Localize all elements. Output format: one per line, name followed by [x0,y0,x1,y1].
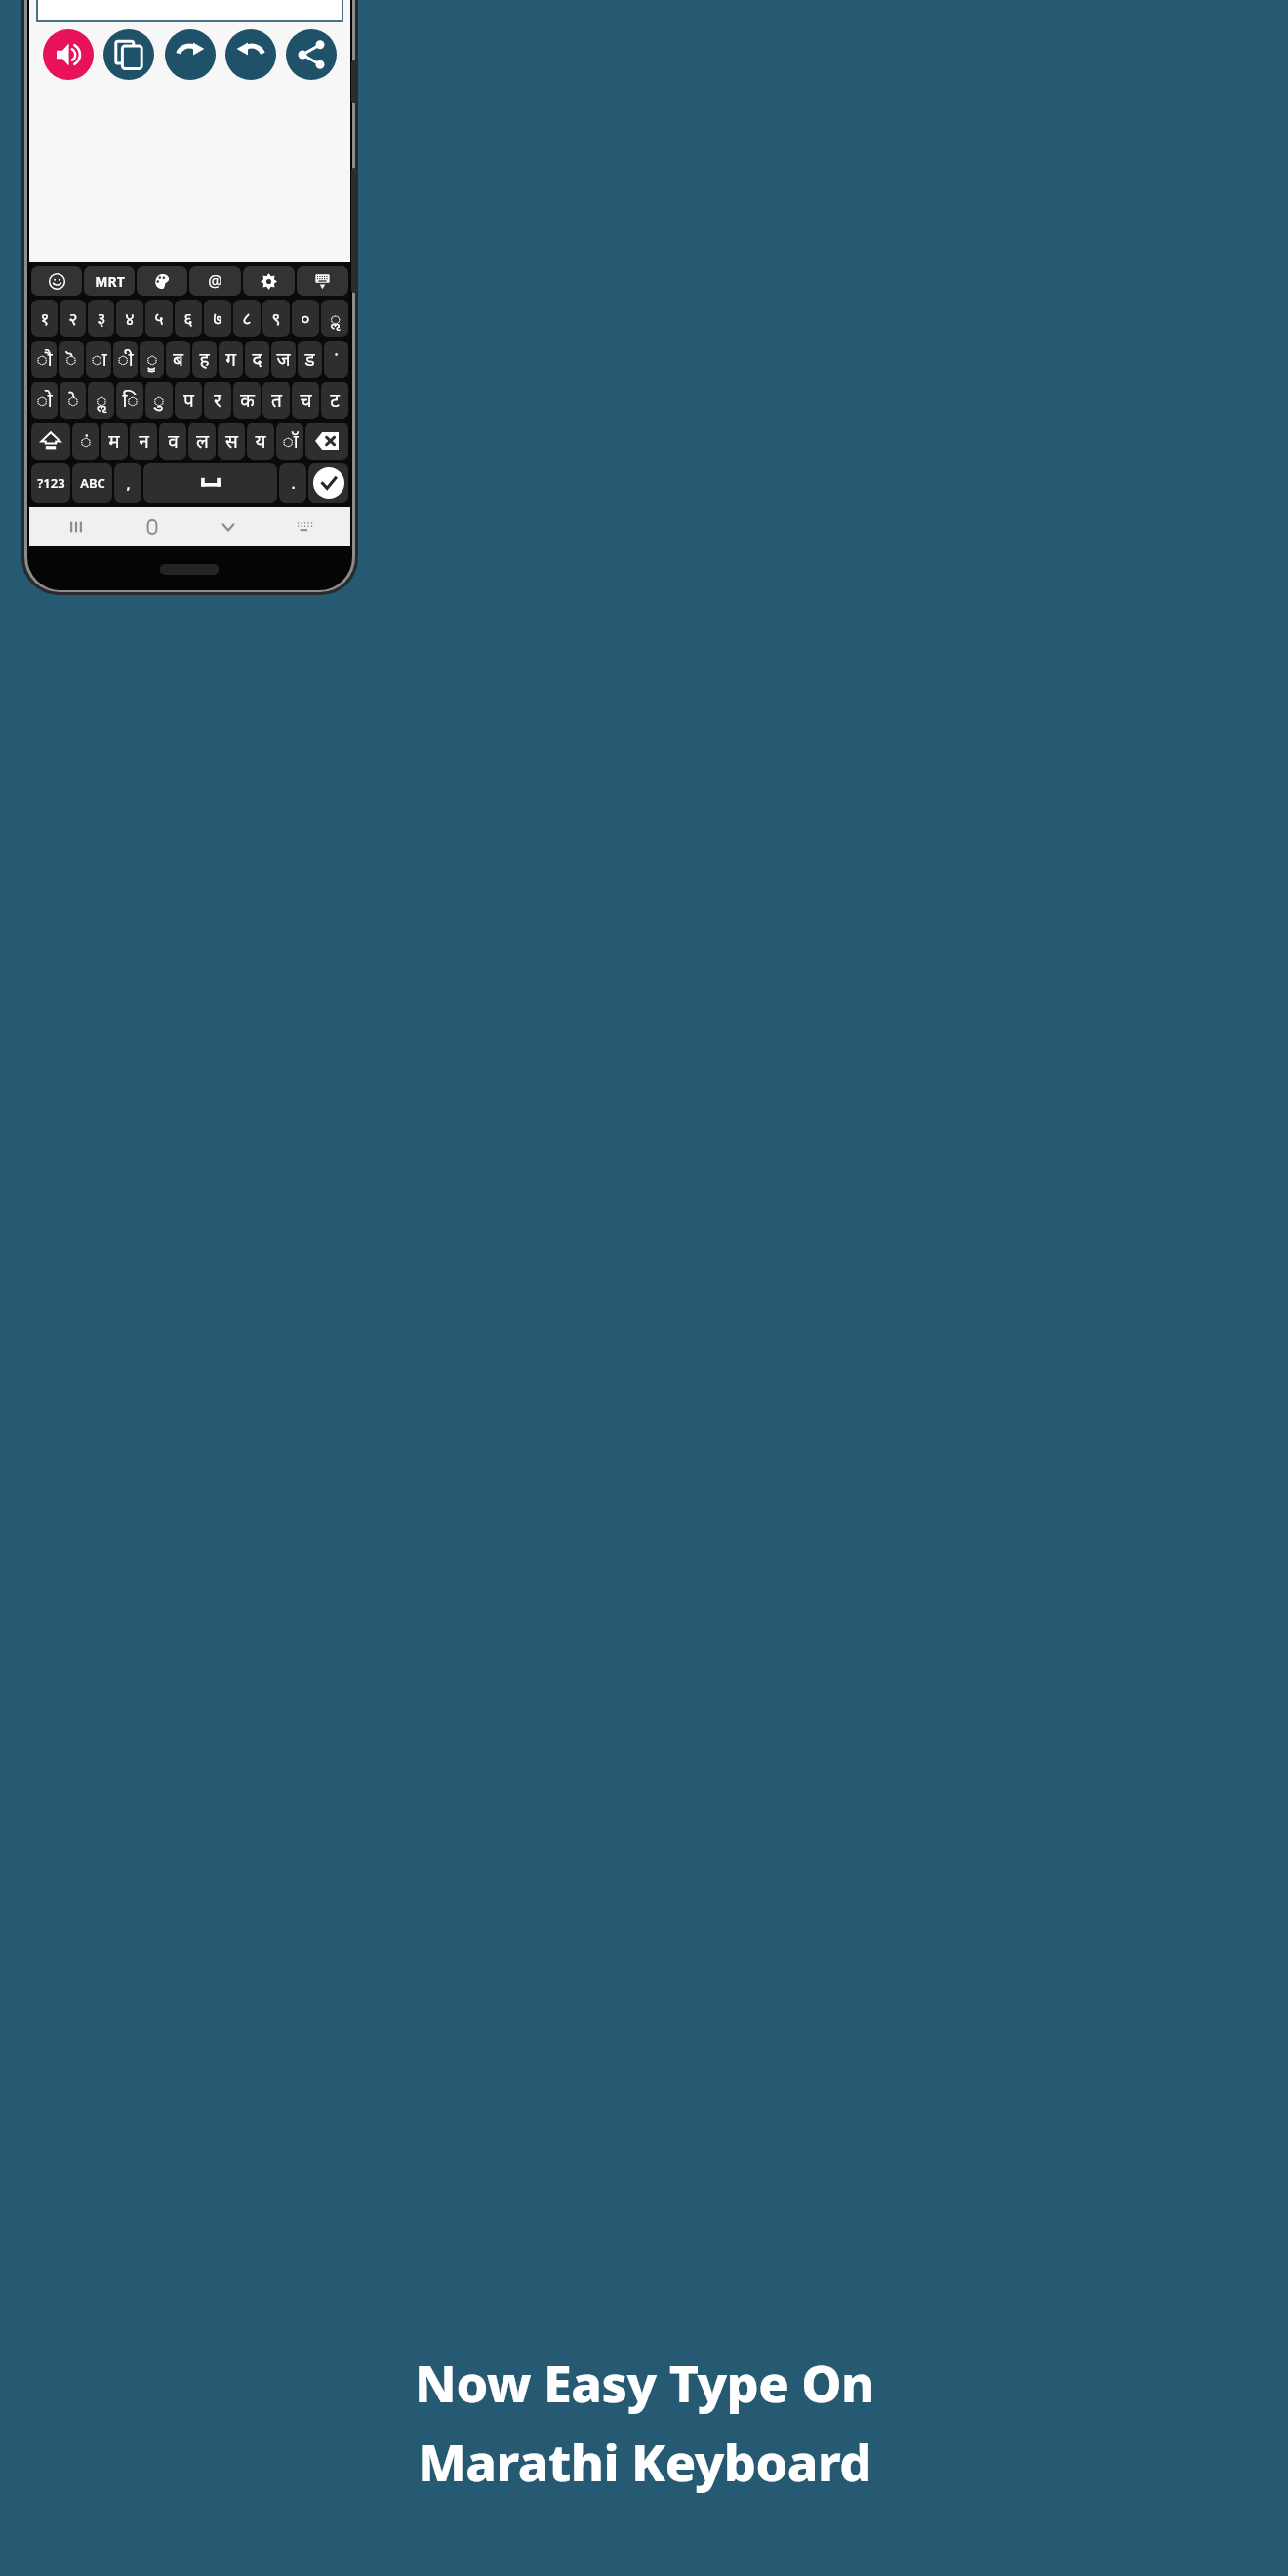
button[interactable]: ौ [31,341,57,378]
staticText: ABC [80,474,105,492]
button[interactable]: ी [113,341,138,378]
button[interactable]: ४ [116,300,143,337]
staticText: ड [304,346,315,372]
button[interactable]: ि [116,382,143,419]
staticText: क [240,387,255,413]
button[interactable]: Share [286,29,337,80]
button[interactable]: प [175,382,202,419]
button[interactable]: Speak [43,29,94,80]
button[interactable]: ॢ [321,300,348,337]
button[interactable]: ॉ [276,423,303,460]
button[interactable]: ७ [204,300,231,337]
button[interactable]: व [159,423,186,460]
button[interactable]: ABC [72,463,112,503]
staticText: ा [91,346,107,372]
button[interactable]: ा [86,341,111,378]
button[interactable]: त [262,382,290,419]
staticText: ॗ [146,346,158,372]
button[interactable]: Redo [165,29,216,80]
button[interactable]: , [114,463,141,503]
button[interactable]: ५ [145,300,173,337]
button[interactable]: ८ [233,300,261,337]
button[interactable]: ॱ [324,341,348,378]
button[interactable]: ग [219,341,243,378]
button[interactable]: Themes [137,266,187,296]
staticText: ४ [125,306,135,331]
button[interactable]: Recents [57,507,96,546]
button[interactable]: . [279,463,306,503]
staticText: े [67,387,79,413]
button[interactable]: स [218,423,245,460]
button[interactable]: Settings [243,266,295,296]
button[interactable]: ॆ [59,341,84,378]
button[interactable]: क [233,382,261,419]
staticText: ं [80,428,92,454]
staticText: १ [40,306,50,331]
staticText: ट [330,387,340,413]
staticText: MRT [95,272,125,291]
button[interactable]: Space [143,463,277,503]
staticText: ९ [271,306,281,331]
button[interactable]: १ [31,300,58,337]
staticText: ?123 [37,474,65,492]
button[interactable]: ० [292,300,319,337]
button[interactable]: ल [188,423,216,460]
button[interactable]: @ [189,266,241,296]
button[interactable]: ६ [175,300,202,337]
staticText: Marathi Keyboard [418,2427,871,2496]
staticText: ॢ [96,387,107,413]
button[interactable]: े [60,382,86,419]
button[interactable]: ं [72,423,99,460]
staticText: ७ [213,306,222,331]
staticText: व [168,428,179,454]
button[interactable]: ॢ [88,382,114,419]
staticText: ह [199,346,210,372]
button[interactable]: ह [192,341,217,378]
staticText: ि [122,387,139,413]
staticText: स [225,428,238,454]
button[interactable]: ब [166,341,190,378]
button[interactable]: र [204,382,231,419]
button[interactable]: ो [31,382,58,419]
button[interactable]: ड [298,341,322,378]
button[interactable]: च [292,382,319,419]
button[interactable]: २ [60,300,86,337]
staticText: प [183,387,194,413]
button[interactable]: ु [145,382,173,419]
staticText: र [214,387,221,413]
button[interactable]: Undo [225,29,276,80]
button[interactable]: म [101,423,128,460]
button[interactable]: ॗ [140,341,164,378]
staticText: @ [208,270,222,292]
button[interactable]: Backspace [305,423,348,460]
button[interactable]: Back [209,507,248,546]
staticText: द [252,346,262,372]
button[interactable]: Enter [308,463,348,503]
staticText: ५ [154,306,164,331]
button[interactable]: ३ [88,300,114,337]
button[interactable]: Hide keyboard [297,266,348,296]
staticText: , [126,473,131,493]
button[interactable]: Shift [31,423,70,460]
staticText: त [271,387,282,413]
button[interactable]: Copy [103,29,154,80]
button[interactable]: Emoji [31,266,82,296]
button[interactable]: MRT [84,266,135,296]
staticText: Now Easy Type On [415,2348,874,2417]
button[interactable]: द [245,341,269,378]
button[interactable]: ट [321,382,348,419]
button[interactable]: य [247,423,274,460]
staticText: ी [117,346,134,372]
button[interactable]: ९ [262,300,290,337]
button[interactable]: ज [271,341,296,378]
button[interactable]: Home [133,507,172,546]
staticText: य [255,428,266,454]
staticText: . [291,473,296,493]
staticText: ॱ [333,346,340,372]
button[interactable]: न [130,423,157,460]
staticText: ॆ [65,346,77,372]
staticText: च [300,387,312,413]
button[interactable]: ?123 [31,463,70,503]
staticText: ो [36,387,53,413]
button[interactable]: Switch keyboard [285,507,324,546]
